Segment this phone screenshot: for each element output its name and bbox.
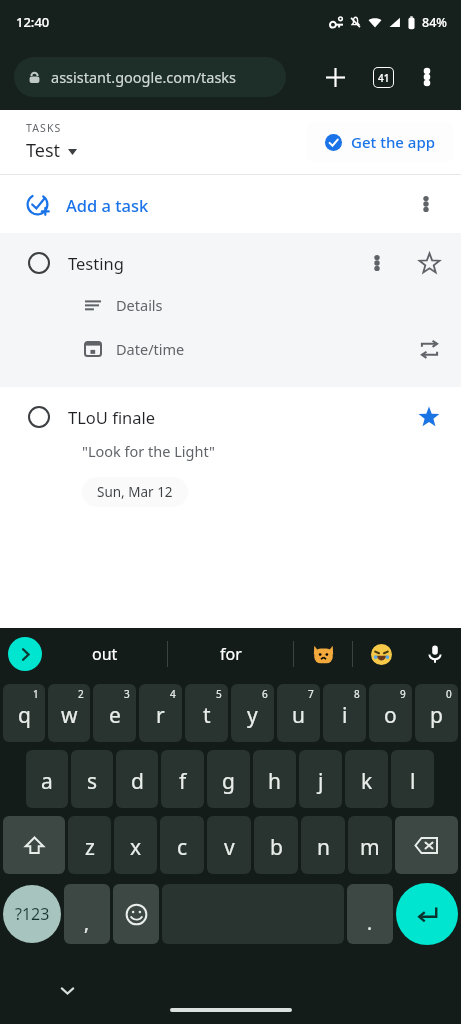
- staticText: ,: [84, 910, 90, 936]
- button[interactable]: h: [253, 750, 296, 808]
- staticText: g: [222, 767, 235, 796]
- button[interactable]: b: [254, 816, 298, 874]
- staticText: Date/time: [116, 339, 185, 359]
- staticText: z: [85, 833, 95, 862]
- button[interactable]: Unstar task: [411, 399, 447, 435]
- staticText: i: [342, 701, 348, 730]
- button[interactable]: z: [68, 816, 111, 874]
- button[interactable]: Shift: [3, 816, 65, 874]
- button[interactable]: e: [93, 684, 136, 742]
- button[interactable]: y: [231, 684, 274, 742]
- button[interactable]: Enter: [396, 883, 458, 945]
- staticText: Add a task: [66, 194, 149, 216]
- button[interactable]: t: [185, 684, 228, 742]
- button[interactable]: r: [139, 684, 182, 742]
- button[interactable]: Add a task: [0, 175, 461, 233]
- button[interactable]: w: [48, 684, 90, 742]
- button[interactable]: s: [71, 750, 113, 808]
- staticText: 5: [216, 687, 222, 701]
- staticText: 4: [170, 687, 176, 701]
- staticText: for: [220, 643, 242, 665]
- button[interactable]: New tab: [315, 57, 355, 97]
- staticText: 84%: [422, 14, 447, 31]
- button[interactable]: Laughing emoji: [353, 628, 409, 680]
- button[interactable]: Comma: [64, 884, 110, 944]
- staticText: j: [318, 767, 324, 796]
- button[interactable]: Sun, Mar 12: [82, 477, 188, 507]
- staticText: d: [131, 767, 144, 796]
- staticText: 9: [400, 687, 406, 701]
- button[interactable]: v: [207, 816, 251, 874]
- staticText: r: [156, 701, 165, 730]
- staticText: w: [61, 701, 78, 730]
- button[interactable]: p: [415, 684, 458, 742]
- button[interactable]: a: [26, 750, 68, 808]
- staticText: 0: [446, 687, 452, 701]
- staticText: m: [360, 833, 380, 862]
- button[interactable]: assistant.google.com/tasks: [14, 57, 286, 97]
- staticText: Test: [26, 138, 61, 163]
- staticText: y: [247, 701, 258, 730]
- button[interactable]: Period: [347, 884, 393, 944]
- button[interactable]: Task options: [359, 245, 395, 281]
- button[interactable]: g: [207, 750, 250, 808]
- staticText: e: [109, 701, 121, 730]
- staticText: 41: [378, 71, 390, 85]
- button[interactable]: Emoji: [113, 884, 159, 944]
- staticText: v: [224, 833, 235, 862]
- button[interactable]: f: [161, 750, 204, 808]
- staticText: 7: [308, 687, 314, 701]
- staticText: TASKS: [26, 121, 62, 135]
- button[interactable]: x: [114, 816, 157, 874]
- staticText: l: [410, 767, 416, 796]
- button[interactable]: l: [391, 750, 434, 808]
- staticText: p: [430, 701, 443, 730]
- staticText: 3: [124, 687, 130, 701]
- staticText: t: [203, 701, 211, 730]
- button[interactable]: Backspace: [395, 816, 458, 874]
- button[interactable]: Get the app: [307, 122, 453, 162]
- button[interactable]: Voice input: [409, 628, 461, 680]
- button[interactable]: Tabs: [363, 57, 403, 97]
- button[interactable]: for: [168, 628, 293, 680]
- button[interactable]: More options: [407, 57, 447, 97]
- staticText: out: [92, 643, 118, 665]
- staticText: 12:40: [16, 13, 50, 31]
- button[interactable]: List options: [409, 187, 443, 221]
- staticText: "Look for the Light": [82, 441, 215, 461]
- staticText: Sun, Mar 12: [97, 483, 173, 501]
- button[interactable]: o: [369, 684, 412, 742]
- button[interactable]: m: [348, 816, 392, 874]
- staticText: Get the app: [351, 132, 436, 152]
- staticText: k: [361, 767, 373, 796]
- button[interactable]: c: [160, 816, 204, 874]
- button[interactable]: d: [116, 750, 158, 808]
- staticText: o: [384, 701, 397, 730]
- button[interactable]: out: [42, 628, 167, 680]
- staticText: u: [292, 701, 305, 730]
- button[interactable]: j: [299, 750, 342, 808]
- button[interactable]: Expand toolbar: [8, 637, 42, 671]
- staticText: x: [130, 833, 142, 862]
- button[interactable]: Repeat: [411, 331, 447, 367]
- button[interactable]: Testing: [0, 233, 461, 387]
- button[interactable]: n: [301, 816, 345, 874]
- staticText: TLoU finale: [68, 406, 156, 428]
- staticText: Details: [116, 295, 163, 315]
- staticText: c: [177, 833, 188, 862]
- button[interactable]: Star task: [411, 245, 447, 281]
- button[interactable]: TLoU finale: [0, 387, 461, 523]
- button[interactable]: k: [345, 750, 388, 808]
- staticText: ?123: [15, 903, 50, 925]
- button[interactable]: Hide keyboard: [52, 975, 82, 1005]
- button[interactable]: Test: [26, 138, 77, 163]
- button[interactable]: ?123: [3, 885, 61, 943]
- staticText: .: [367, 910, 373, 936]
- button[interactable]: q: [3, 684, 45, 742]
- button[interactable]: Cat emoji: [294, 628, 352, 680]
- staticText: q: [18, 701, 31, 730]
- staticText: s: [87, 767, 98, 796]
- button[interactable]: i: [323, 684, 366, 742]
- button[interactable]: u: [277, 684, 320, 742]
